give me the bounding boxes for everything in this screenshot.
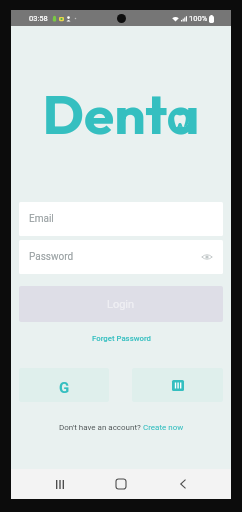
button[interactable]: Create now <box>143 423 184 432</box>
button[interactable]: Sign in with Google <box>19 368 109 402</box>
button[interactable]: Forget Password <box>86 331 157 346</box>
staticText: 03:58 <box>29 14 48 23</box>
button[interactable]: Show password <box>200 250 214 264</box>
staticText: Password <box>29 251 74 263</box>
button[interactable]: Back <box>170 471 196 497</box>
staticText: Login <box>107 298 135 311</box>
button[interactable]: Email <box>19 202 223 236</box>
staticText: Email <box>29 213 54 225</box>
staticText: G <box>59 379 70 397</box>
button[interactable]: Home <box>108 471 134 497</box>
staticText: Don't have an account? <box>59 423 143 432</box>
staticText: 100% <box>189 14 208 23</box>
button[interactable]: Sign in with ID card <box>132 368 223 402</box>
staticText: Denta <box>19 79 223 148</box>
button[interactable]: Password <box>19 240 223 274</box>
button[interactable]: Recent apps <box>47 471 73 497</box>
